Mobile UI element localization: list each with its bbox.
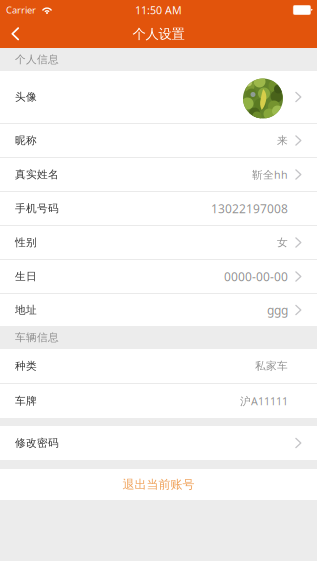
button[interactable]: 手机号码 [0, 192, 317, 226]
staticText: 手机号码 [15, 202, 59, 215]
staticText: 真实姓名 [15, 168, 59, 181]
staticText: 0000-00-00 [224, 268, 288, 284]
button[interactable]: 性别 [0, 226, 317, 260]
button[interactable]: 昵称 [0, 124, 317, 158]
staticText: 性别 [15, 236, 37, 249]
button[interactable]: 修改密码 [0, 426, 317, 460]
staticText: 修改密码 [15, 436, 59, 449]
staticText: 靳全hh [252, 167, 288, 182]
staticText: 车辆信息 [15, 331, 59, 344]
staticText: 地址 [15, 303, 37, 316]
staticText: 车牌 [15, 394, 37, 407]
staticText: 女 [277, 236, 288, 249]
button[interactable]: 种类 [0, 349, 317, 384]
button[interactable]: 退出当前账号 [0, 469, 317, 500]
staticText: 私家车 [255, 359, 288, 372]
staticText: 昵称 [15, 134, 37, 147]
staticText: 来 [277, 134, 288, 147]
button[interactable]: 车牌 [0, 384, 317, 418]
staticText: Carrier [6, 4, 36, 16]
button[interactable]: 生日 [0, 260, 317, 294]
staticText: 生日 [15, 270, 37, 283]
staticText: 11:50 AM [135, 3, 182, 17]
button[interactable]: 头像 [0, 71, 317, 124]
staticText: 13022197008 [211, 200, 288, 216]
staticText: 个人设置 [132, 26, 184, 42]
staticText: 沪A11111 [240, 394, 288, 408]
staticText: ggg [267, 302, 288, 318]
button[interactable]: 真实姓名 [0, 158, 317, 192]
staticText: 退出当前账号 [122, 477, 194, 492]
button[interactable]: Back [0, 20, 44, 48]
staticText: 种类 [15, 359, 37, 372]
staticText: 个人信息 [15, 53, 59, 66]
staticText: 头像 [15, 90, 37, 103]
button[interactable]: 地址 [0, 294, 317, 326]
